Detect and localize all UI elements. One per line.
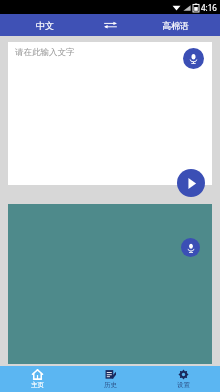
staticText: 中文 xyxy=(36,20,54,31)
staticText: 历史 xyxy=(104,381,117,389)
button[interactable]: Play xyxy=(177,169,205,197)
button[interactable]: 历史 xyxy=(74,366,147,392)
staticText: 4:16 xyxy=(201,2,217,13)
button[interactable]: Speak translation xyxy=(181,238,200,257)
button[interactable]: Voice input xyxy=(183,48,204,69)
staticText: 请在此输入文字 xyxy=(15,47,75,58)
button[interactable]: 高棉语 xyxy=(130,14,220,36)
button[interactable]: 请在此输入文字 xyxy=(8,42,212,185)
button[interactable]: 中文 xyxy=(0,14,90,36)
button[interactable]: 设置 xyxy=(147,366,220,392)
staticText: 设置 xyxy=(177,381,190,389)
button[interactable]: Speak translation xyxy=(8,204,212,364)
button[interactable]: Swap languages xyxy=(90,14,130,36)
button[interactable]: 主页 xyxy=(0,366,74,392)
staticText: 高棉语 xyxy=(162,20,189,31)
staticText: 主页 xyxy=(31,381,44,389)
